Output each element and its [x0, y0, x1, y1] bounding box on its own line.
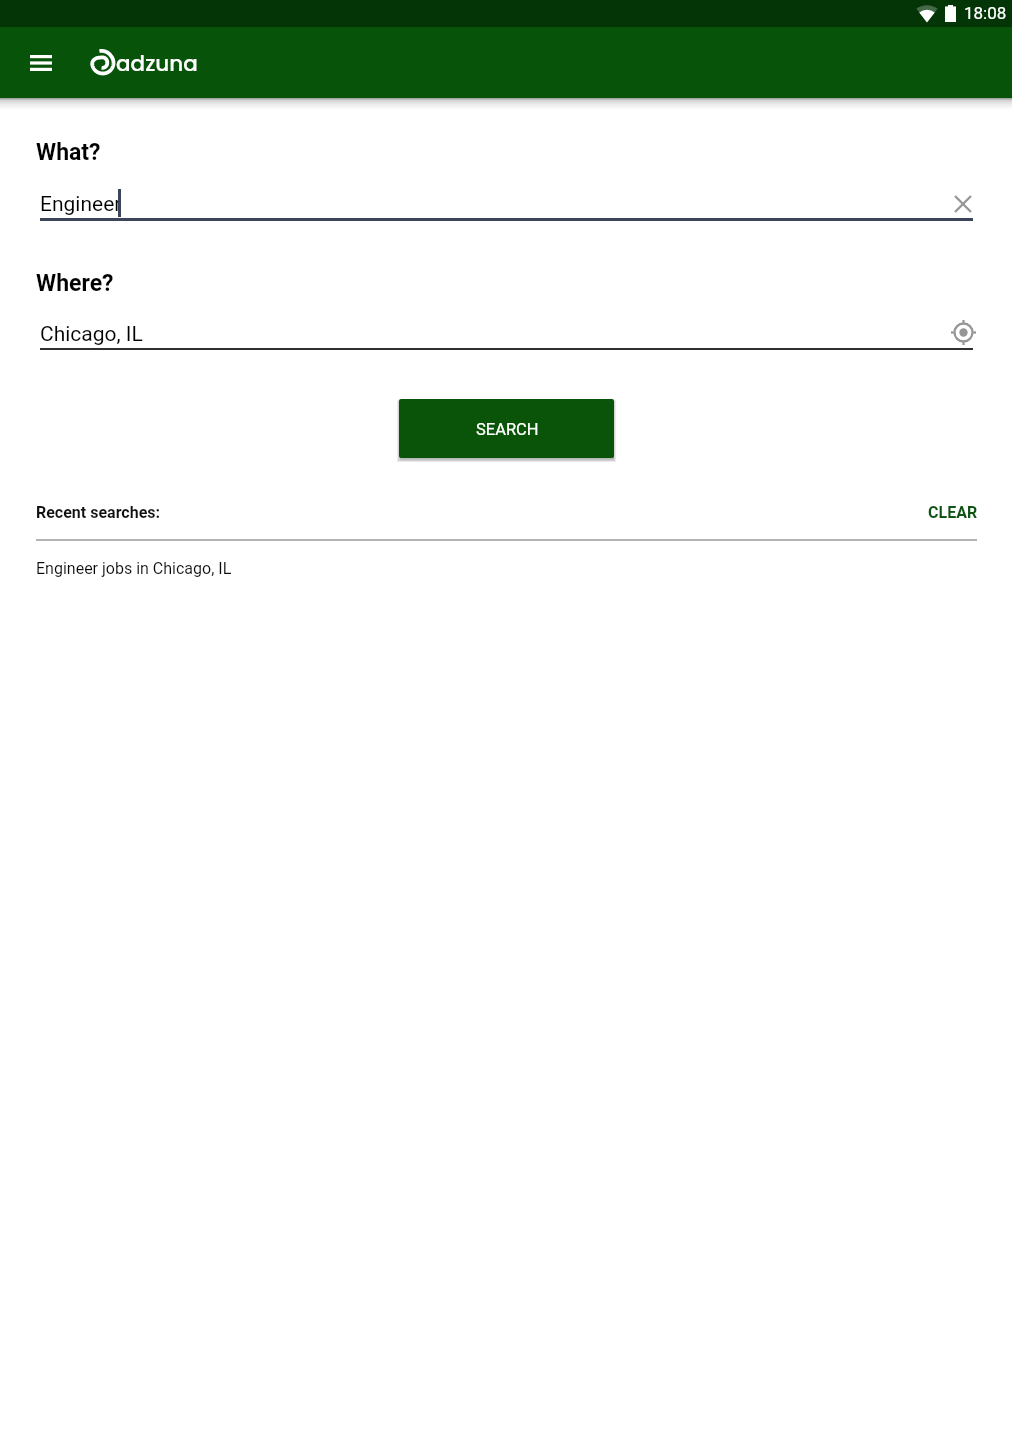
staticText: Engineer jobs in Chicago, IL: [36, 559, 232, 578]
staticText: Recent searches:: [36, 503, 161, 522]
staticText: Engineer: [40, 192, 122, 217]
staticText: CLEAR: [928, 503, 978, 522]
staticText: Where?: [36, 270, 114, 297]
button[interactable]: SEARCH: [399, 399, 614, 458]
button[interactable]: [36, 312, 936, 352]
staticText: Chicago, IL: [40, 322, 143, 347]
button[interactable]: Engineer jobs in Chicago, IL: [0, 552, 1012, 594]
button[interactable]: CLEAR: [914, 494, 992, 530]
button[interactable]: [36, 180, 936, 222]
staticText: What?: [36, 139, 101, 166]
button[interactable]: Use my current location: [941, 310, 985, 354]
staticText: adzuna: [116, 48, 198, 78]
button[interactable]: Clear what field: [941, 182, 985, 226]
button[interactable]: Open navigation drawer: [15, 37, 66, 88]
staticText: SEARCH: [476, 420, 539, 439]
staticText: 18:08: [964, 3, 1007, 23]
